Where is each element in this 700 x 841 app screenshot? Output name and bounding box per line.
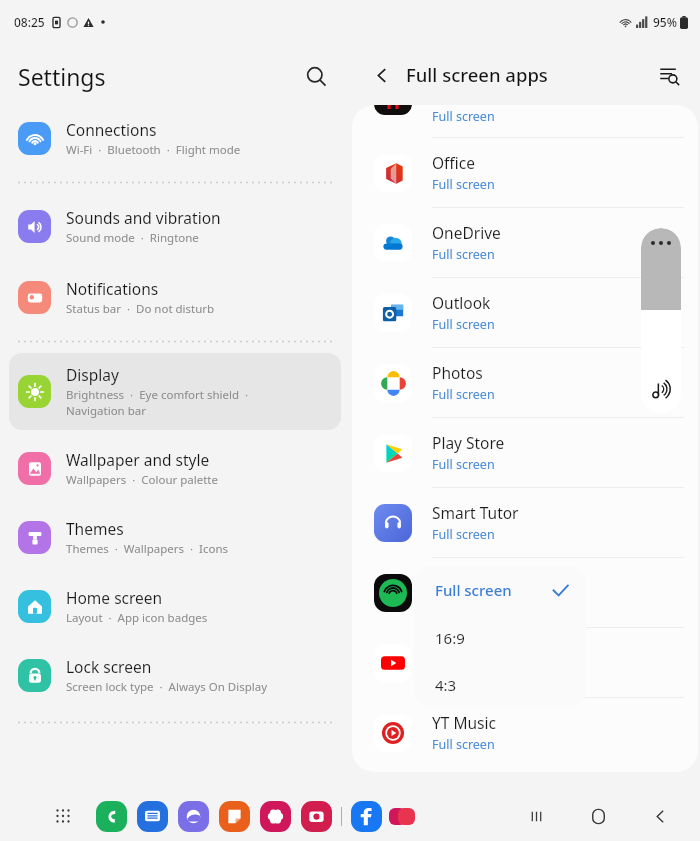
staticText: Full screen: [432, 246, 495, 263]
button[interactable]: Lock screen: [9, 645, 341, 706]
staticText: Full screen: [432, 386, 495, 403]
button[interactable]: YT Music: [352, 698, 698, 767]
staticText: Office: [432, 152, 475, 173]
button[interactable]: Connections: [9, 108, 341, 169]
button[interactable]: Internet: [178, 801, 209, 832]
staticText: YouTube: [432, 642, 495, 663]
button[interactable]: Outlook: [352, 278, 698, 347]
staticText: Sound mode · Ringtone: [66, 230, 199, 246]
staticText: Lock screen: [66, 656, 152, 677]
button[interactable]: Edge panel handle: [641, 228, 681, 413]
button[interactable]: Smart Tutor: [352, 488, 698, 557]
staticText: Smart Tutor: [432, 502, 519, 523]
staticText: Full screen: [432, 456, 495, 473]
staticText: Full screen: [432, 108, 495, 125]
button[interactable]: Themes: [9, 507, 341, 568]
staticText: YT Music: [432, 712, 496, 733]
staticText: Full screen: [432, 736, 495, 753]
staticText: Notifications: [66, 278, 159, 299]
staticText: Outlook: [432, 292, 491, 313]
button[interactable]: YouTube: [352, 628, 698, 697]
button[interactable]: Sort and search: [650, 56, 688, 94]
staticText: Connections: [66, 119, 157, 140]
button[interactable]: Photos: [352, 348, 698, 417]
staticText: Wi-Fi · Bluetooth · Flight mode: [66, 142, 241, 158]
button[interactable]: OneDrive: [352, 208, 698, 277]
staticText: Play Store: [432, 432, 505, 453]
button[interactable]: Apps: [46, 799, 80, 833]
staticText: Home screen: [66, 587, 163, 608]
button[interactable]: Full screen: [414, 566, 586, 614]
button[interactable]: Play Store: [352, 418, 698, 487]
button[interactable]: Home screen: [9, 576, 341, 637]
staticText: Navigation bar: [66, 403, 146, 419]
button[interactable]: Office: [352, 138, 698, 207]
button[interactable]: Gallery: [260, 801, 291, 832]
staticText: 4:3: [435, 675, 457, 695]
button[interactable]: Sounds and vibration: [9, 196, 341, 257]
staticText: Themes: [66, 518, 124, 539]
button[interactable]: Display: [9, 353, 341, 430]
staticText: Full screen: [432, 176, 495, 193]
staticText: Display: [66, 364, 119, 385]
staticText: Status bar · Do not disturb: [66, 301, 215, 317]
button[interactable]: Back: [642, 798, 678, 834]
staticText: Layout · App icon badges: [66, 610, 208, 626]
staticText: Themes · Wallpapers · Icons: [66, 541, 228, 557]
staticText: 95%: [653, 14, 677, 30]
button[interactable]: Back: [364, 57, 400, 93]
staticText: Full screen: [435, 580, 512, 600]
staticText: OneDrive: [432, 222, 501, 243]
button[interactable]: Phone: [96, 801, 127, 832]
button[interactable]: Camera: [301, 801, 332, 832]
button[interactable]: Recents: [518, 798, 554, 834]
staticText: Settings: [18, 61, 106, 92]
button[interactable]: 16:9: [414, 614, 586, 661]
staticText: Brightness · Eye comfort shield ·: [66, 387, 249, 403]
staticText: Full screen: [432, 666, 495, 683]
button[interactable]: Facebook: [351, 801, 382, 832]
staticText: Full screen: [432, 316, 495, 333]
button[interactable]: Messages: [137, 801, 168, 832]
staticText: Full screen: [432, 526, 495, 543]
staticText: Sounds and vibration: [66, 207, 221, 228]
button[interactable]: Notifications: [9, 267, 341, 328]
button[interactable]: 4:3: [414, 661, 586, 708]
button[interactable]: Spotify: [352, 558, 698, 627]
staticText: 08:25: [14, 14, 45, 30]
staticText: 16:9: [435, 628, 465, 648]
staticText: Spotify: [432, 572, 483, 593]
button[interactable]: Search settings: [296, 56, 336, 96]
staticText: Screen lock type · Always On Display: [66, 679, 268, 695]
button[interactable]: Notes: [219, 801, 250, 832]
staticText: Full screen apps: [406, 62, 548, 87]
staticText: Wallpapers · Colour palette: [66, 472, 218, 488]
button[interactable]: Recent apps pair: [389, 803, 415, 829]
staticText: Photos: [432, 362, 483, 383]
button[interactable]: Home: [580, 798, 616, 834]
button[interactable]: Wallpaper and style: [9, 438, 341, 499]
staticText: Wallpaper and style: [66, 449, 210, 470]
